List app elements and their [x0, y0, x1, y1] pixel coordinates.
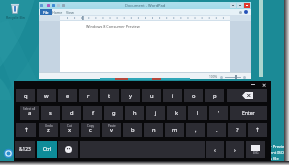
button[interactable]: t — [100, 89, 119, 102]
button[interactable]: u — [142, 89, 161, 102]
button[interactable]: n — [144, 123, 163, 137]
button[interactable]: Backspace — [227, 89, 267, 102]
staticText: x — [68, 126, 72, 134]
staticText: ‹ — [214, 146, 216, 154]
button[interactable]: y — [121, 89, 140, 102]
button[interactable]: . — [207, 123, 226, 137]
button[interactable]: l — [188, 106, 207, 120]
button[interactable]: o — [184, 89, 203, 102]
button[interactable]: Toolbar action — [52, 4, 55, 7]
button[interactable]: Ctrl — [37, 141, 57, 158]
button[interactable]: Enter — [230, 106, 267, 120]
staticText: ? — [236, 126, 239, 134]
staticText: Select all — [23, 107, 36, 111]
button[interactable]: Toolbar action — [62, 4, 65, 7]
staticText: Paste — [108, 124, 116, 128]
button[interactable]: Close keyboard — [260, 81, 269, 88]
button[interactable]: e — [58, 89, 77, 102]
staticText: q — [24, 92, 28, 100]
staticText: Undo — [45, 124, 53, 128]
button[interactable]: Maximize — [237, 3, 243, 8]
staticText: s file — [270, 156, 279, 161]
staticText: o — [192, 92, 196, 100]
button[interactable]: Recycle Bin — [2, 2, 28, 20]
button[interactable]: ? — [228, 123, 246, 137]
button[interactable]: ↑ — [248, 123, 267, 137]
staticText: a — [28, 109, 32, 117]
staticText: v — [110, 126, 113, 134]
button[interactable]: Toolbar action — [47, 4, 50, 7]
button[interactable]: , — [186, 123, 205, 137]
staticText: t — [108, 92, 111, 100]
button[interactable]: › — [226, 141, 244, 158]
staticText: ENG — [253, 151, 259, 155]
staticText: k — [175, 109, 179, 117]
button[interactable]: r — [79, 89, 98, 102]
staticText: 100% — [209, 75, 218, 79]
button[interactable]: Zoom out — [220, 76, 223, 79]
button[interactable]: b — [123, 123, 142, 137]
staticText: h — [133, 109, 137, 117]
button[interactable]: Help — [244, 10, 248, 14]
button[interactable]: Home — [51, 9, 64, 15]
button[interactable]: View — [64, 9, 76, 15]
staticText: r — [87, 92, 90, 100]
button[interactable]: g — [104, 106, 123, 120]
button[interactable]: z — [39, 123, 58, 137]
button[interactable]: Toolbar action — [40, 4, 43, 7]
button[interactable]: m — [165, 123, 184, 137]
staticText: n — [152, 126, 156, 134]
button[interactable]: j — [146, 106, 165, 120]
staticText: u — [150, 92, 154, 100]
staticText: e — [66, 92, 70, 100]
staticText: Windows 8 Consumer Preview — [86, 24, 140, 29]
button[interactable]: w — [37, 89, 56, 102]
button[interactable]: i — [163, 89, 182, 102]
staticText: c — [89, 126, 92, 134]
staticText: s — [49, 109, 52, 117]
staticText: z — [47, 126, 50, 134]
button[interactable]: File — [40, 9, 52, 15]
button[interactable]: k — [167, 106, 186, 120]
button[interactable]: Minimize — [230, 3, 236, 8]
staticText: ent ISO — [270, 150, 284, 155]
staticText: Home — [52, 10, 63, 15]
button[interactable]: x — [60, 123, 79, 137]
button[interactable]: ↑ — [16, 123, 36, 137]
staticText: w — [44, 92, 49, 100]
button[interactable]: &123 — [15, 141, 35, 158]
button[interactable]: ‹ — [206, 141, 224, 158]
staticText: ↑ — [255, 127, 260, 134]
button[interactable]: v — [102, 123, 121, 137]
button[interactable]: Minimize ribbon — [239, 11, 242, 14]
staticText: View — [66, 10, 74, 15]
staticText: › — [234, 146, 236, 154]
button[interactable]: c — [81, 123, 100, 137]
button[interactable]: ' — [209, 106, 228, 120]
staticText: Ctrl — [43, 146, 51, 153]
button[interactable]: s — [41, 106, 60, 120]
staticText: Cut — [67, 124, 72, 128]
button[interactable]: d — [62, 106, 81, 120]
button[interactable]: Minimize keyboard — [248, 81, 257, 88]
button[interactable]: p — [205, 89, 224, 102]
staticText: Copy — [87, 124, 95, 128]
button[interactable]: a — [20, 106, 39, 120]
button[interactable]: f — [83, 106, 102, 120]
button[interactable]: Keyboard layout — [246, 141, 265, 158]
button[interactable]: q — [16, 89, 35, 102]
staticText: Enter — [242, 110, 255, 117]
staticText: r Preview — [270, 144, 288, 149]
staticText: d — [70, 109, 74, 117]
staticText: l — [197, 109, 199, 117]
button[interactable]: Internet Explorer — [3, 148, 14, 159]
button[interactable]: h — [125, 106, 144, 120]
staticText: i — [172, 92, 174, 100]
button[interactable]: Emoji — [58, 141, 78, 158]
staticText: Recycle Bin — [6, 15, 25, 20]
staticText: File — [43, 10, 49, 15]
button[interactable]: Zoom in — [243, 76, 246, 79]
button[interactable]: Close — [244, 3, 250, 8]
